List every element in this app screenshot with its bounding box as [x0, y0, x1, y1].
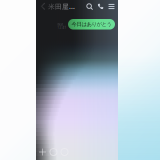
button[interactable]: Call: [97, 3, 104, 10]
staticText: 米田屋二丁字: [48, 2, 78, 11]
button[interactable]: Back: [39, 1, 47, 12]
button[interactable]: Add: [38, 147, 47, 156]
button[interactable]: Search: [86, 3, 93, 10]
staticText: 今日はありがとう: [71, 21, 111, 28]
button[interactable]: Menu: [108, 3, 115, 10]
staticText: 既読 12:41: [57, 23, 66, 29]
button[interactable]: Camera: [49, 147, 58, 156]
